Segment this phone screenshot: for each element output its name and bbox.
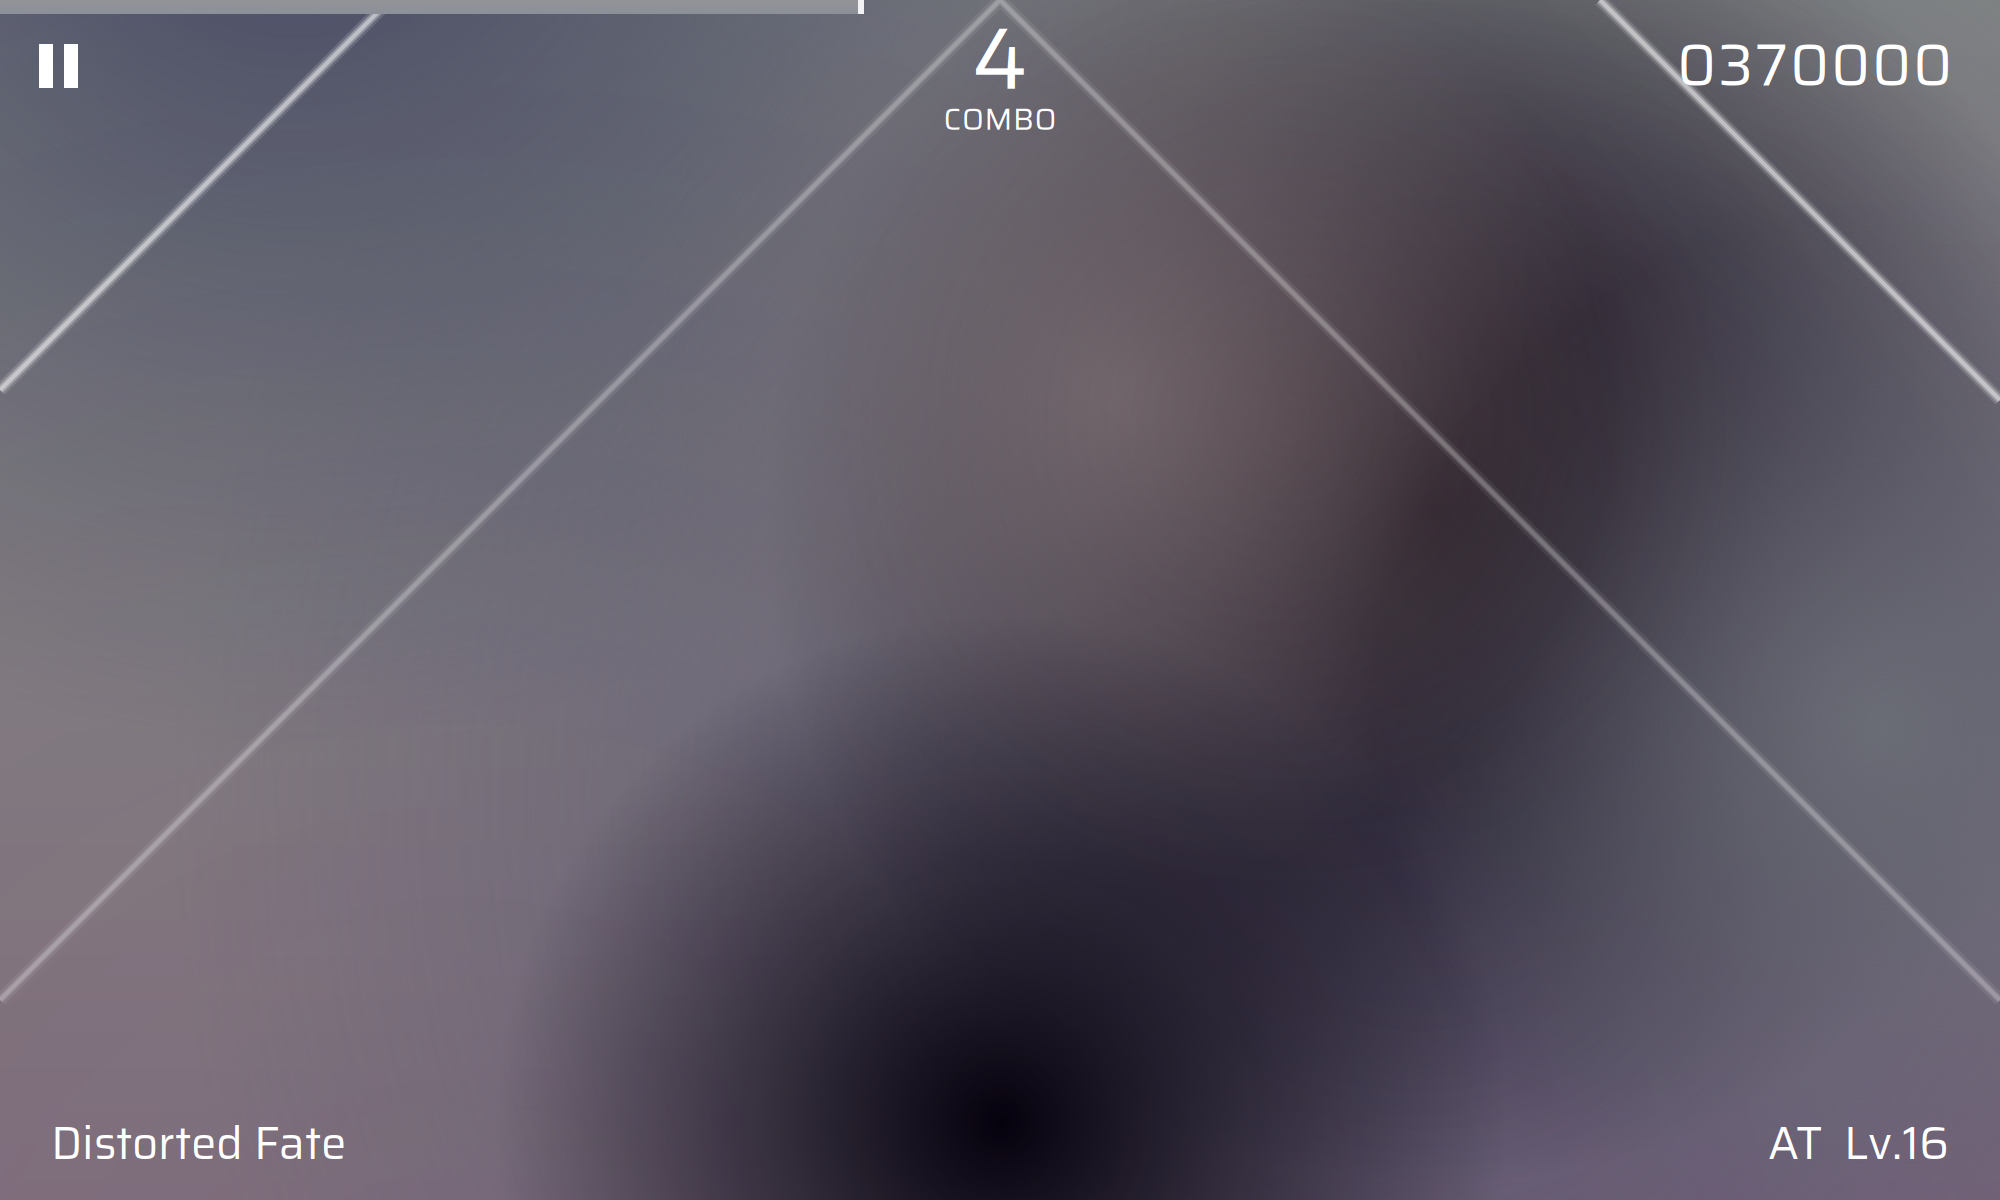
button[interactable]: Pause bbox=[0, 0, 117, 132]
staticText: COMBO bbox=[943, 95, 1056, 143]
staticText: AT Lv.16 bbox=[1768, 1108, 1949, 1179]
staticText: 0370000 bbox=[1677, 19, 1952, 111]
staticText: 4 bbox=[972, 0, 1028, 127]
staticText: Distorted Fate bbox=[51, 1108, 346, 1179]
